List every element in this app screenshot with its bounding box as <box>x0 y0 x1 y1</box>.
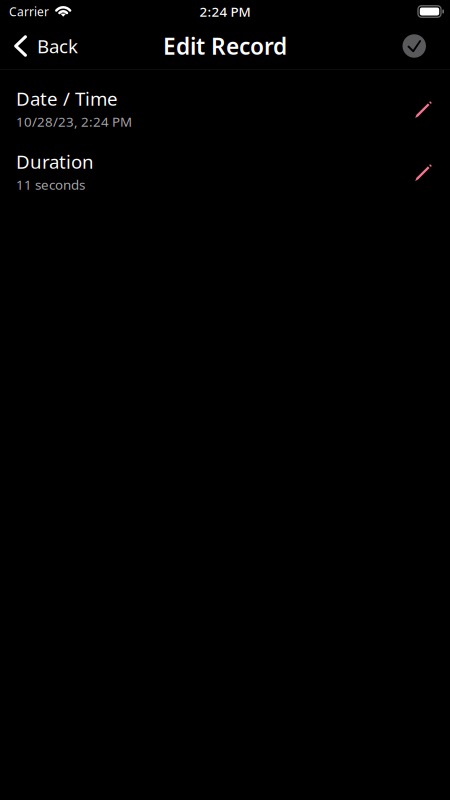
staticText: Edit Record <box>163 31 287 61</box>
button[interactable]: Back <box>0 23 90 69</box>
staticText: Back <box>37 34 78 58</box>
button[interactable]: Duration <box>0 133 450 196</box>
staticText: 2:24 PM <box>199 3 250 20</box>
staticText: 10/28/23, 2:24 PM <box>16 113 132 130</box>
staticText: Duration <box>16 149 94 174</box>
button[interactable]: Date / Time <box>0 70 450 133</box>
button[interactable]: Done <box>390 23 450 69</box>
staticText: Carrier <box>9 3 49 19</box>
staticText: Date / Time <box>16 86 118 111</box>
staticText: 11 seconds <box>16 176 85 193</box>
